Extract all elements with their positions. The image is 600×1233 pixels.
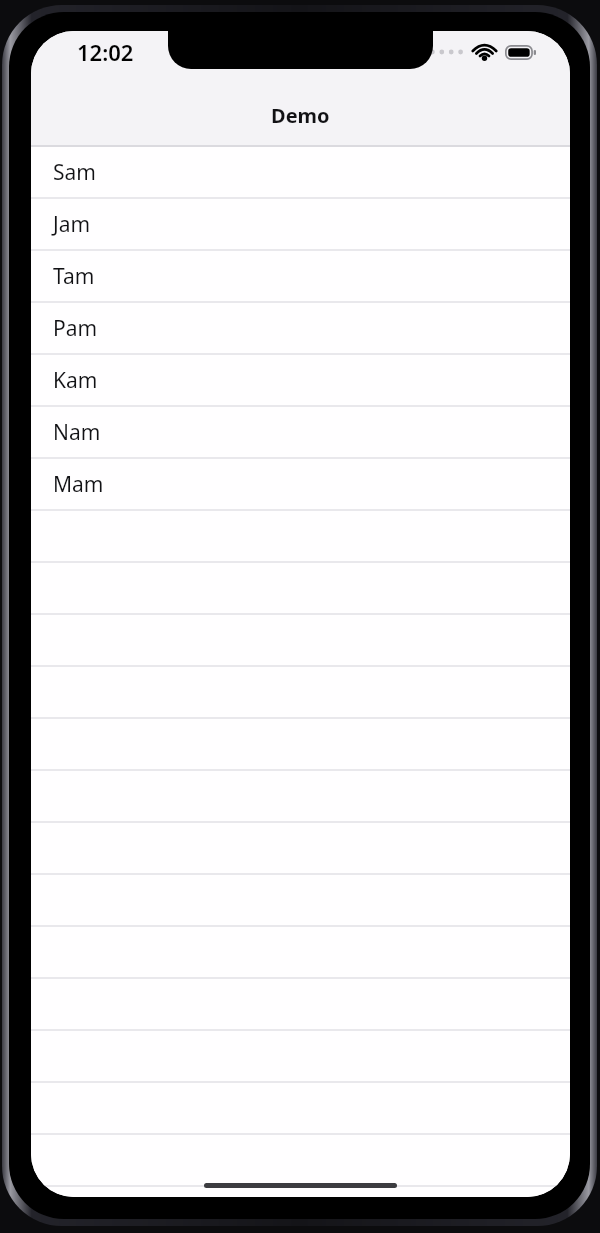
other: Battery bbox=[505, 45, 536, 60]
staticText: 12:02 bbox=[77, 37, 134, 67]
staticText: Demo bbox=[271, 102, 330, 129]
staticText: Tam bbox=[53, 262, 95, 291]
staticText: Jam bbox=[53, 210, 91, 239]
staticText: Mam bbox=[53, 470, 104, 499]
button[interactable]: Kam bbox=[31, 355, 570, 407]
button[interactable]: Nam bbox=[31, 407, 570, 459]
button[interactable]: Tam bbox=[31, 251, 570, 303]
button[interactable]: Pam bbox=[31, 303, 570, 355]
button[interactable]: Mam bbox=[31, 459, 570, 511]
other: Cellular signal bbox=[430, 47, 463, 57]
other: Wi-Fi bbox=[472, 43, 497, 61]
staticText: Sam bbox=[53, 158, 96, 187]
staticText: Pam bbox=[53, 314, 98, 343]
staticText: Kam bbox=[53, 366, 98, 395]
button[interactable]: Sam bbox=[31, 147, 570, 199]
button[interactable]: Jam bbox=[31, 199, 570, 251]
staticText: Nam bbox=[53, 418, 101, 447]
